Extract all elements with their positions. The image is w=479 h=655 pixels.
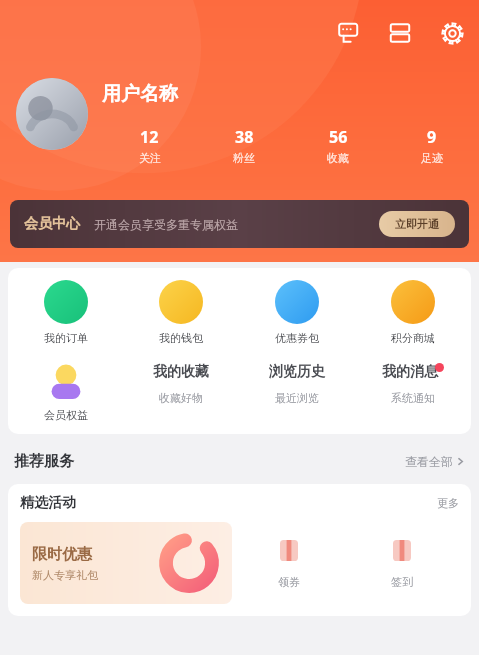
staticText: 我的收藏 bbox=[153, 363, 209, 381]
button[interactable]: Settings bbox=[435, 16, 469, 50]
button[interactable]: 领券 bbox=[232, 537, 345, 589]
staticText: 足迹 bbox=[421, 151, 443, 165]
staticText: 开通会员享受多重专属权益 bbox=[94, 217, 238, 232]
staticText: 我的消息 bbox=[382, 363, 438, 381]
button[interactable]: 更多 bbox=[437, 496, 459, 510]
staticText: 收藏好物 bbox=[159, 391, 203, 405]
button[interactable]: 优惠券包 bbox=[239, 280, 355, 345]
button[interactable]: 38 bbox=[197, 126, 291, 165]
staticText: 12 bbox=[140, 126, 159, 148]
staticText: 38 bbox=[235, 126, 254, 148]
staticText: 系统通知 bbox=[391, 391, 435, 405]
button[interactable]: Scan bbox=[383, 16, 417, 50]
button[interactable] bbox=[16, 78, 88, 150]
staticText: 9 bbox=[427, 126, 437, 148]
button[interactable]: 精选活动 bbox=[20, 494, 76, 512]
button[interactable]: 查看全部 bbox=[405, 454, 465, 469]
button[interactable]: 限时优惠 bbox=[20, 522, 232, 604]
staticText: 会员中心 bbox=[24, 215, 80, 233]
staticText: 我的订单 bbox=[44, 331, 88, 345]
staticText: 立即开通 bbox=[395, 217, 439, 231]
staticText: 新人专享礼包 bbox=[32, 568, 98, 582]
button[interactable]: 会员中心 bbox=[10, 200, 469, 248]
button[interactable]: 签到 bbox=[345, 537, 459, 589]
button[interactable]: 12 bbox=[102, 126, 197, 165]
staticText: 最近浏览 bbox=[275, 391, 319, 405]
staticText: 收藏 bbox=[327, 151, 349, 165]
button[interactable]: 我的订单 bbox=[8, 280, 123, 345]
staticText: 签到 bbox=[391, 575, 413, 589]
staticText: 56 bbox=[329, 126, 348, 148]
button[interactable]: 我的钱包 bbox=[123, 280, 239, 345]
staticText: 粉丝 bbox=[233, 151, 255, 165]
staticText: 关注 bbox=[139, 151, 161, 165]
staticText: 我的钱包 bbox=[159, 331, 203, 345]
button[interactable]: 立即开通 bbox=[379, 211, 455, 237]
button[interactable]: Messages bbox=[331, 16, 365, 50]
staticText: 会员权益 bbox=[44, 408, 88, 422]
staticText: 查看全部 bbox=[405, 454, 453, 469]
button[interactable]: 推荐服务 bbox=[14, 452, 74, 471]
button[interactable]: 我的消息 bbox=[355, 363, 471, 405]
button[interactable]: 会员权益 bbox=[44, 363, 88, 422]
staticText: 领券 bbox=[278, 575, 300, 589]
button[interactable]: 用户名称 bbox=[102, 82, 178, 106]
button[interactable]: 浏览历史 bbox=[239, 363, 355, 405]
button[interactable]: 我的收藏 bbox=[123, 363, 239, 405]
button[interactable]: 56 bbox=[291, 126, 385, 165]
staticText: 限时优惠 bbox=[32, 545, 92, 564]
button[interactable]: 积分商城 bbox=[355, 280, 471, 345]
staticText: 优惠券包 bbox=[275, 331, 319, 345]
staticText: 浏览历史 bbox=[269, 363, 325, 381]
staticText: 积分商城 bbox=[391, 331, 435, 345]
button[interactable]: 9 bbox=[385, 126, 479, 165]
